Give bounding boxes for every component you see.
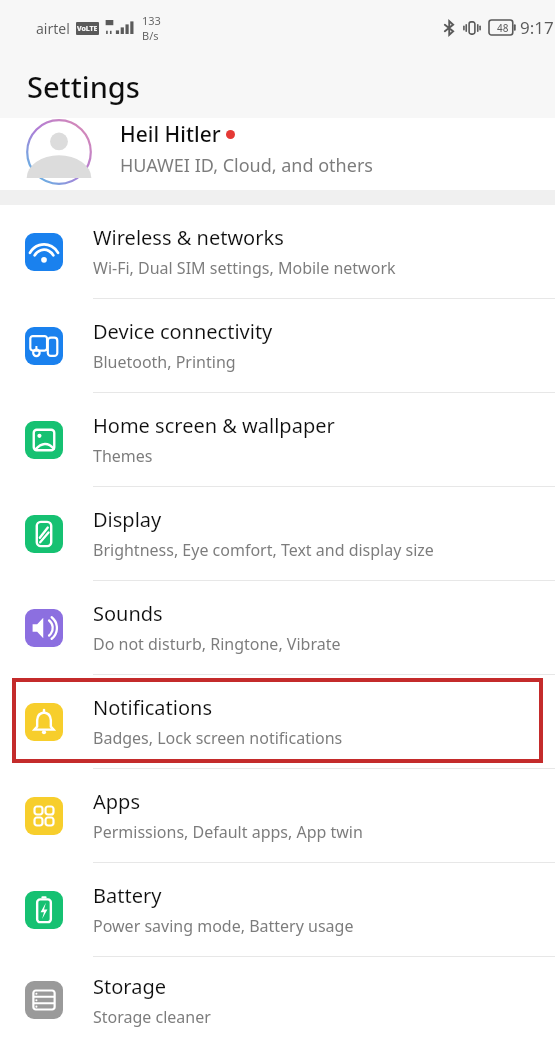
button[interactable]: Heil Hitler [0,118,555,190]
button[interactable]: Wireless & networks [0,205,555,298]
staticText: Storage cleaner [93,1006,211,1028]
other: Vibrate mode [463,19,481,37]
button[interactable]: Battery [0,863,555,956]
staticText: Battery [93,882,162,909]
staticText: airtel [36,19,70,38]
staticText: Storage [93,973,166,1000]
staticText: Heil Hitler [120,120,221,149]
button[interactable]: Home screen & wallpaper [0,393,555,486]
button[interactable]: Display [0,487,555,580]
staticText: Apps [93,788,140,815]
staticText: Brightness, Eye comfort, Text and displa… [93,539,434,561]
staticText: Do not disturb, Ringtone, Vibrate [93,633,341,655]
staticText: Wireless & networks [93,224,284,251]
staticText: Bluetooth, Printing [93,351,236,373]
other: Battery 48 percent [489,20,516,35]
staticText: B/s [142,28,159,43]
other: Bluetooth [443,19,456,37]
staticText: Sounds [93,600,163,627]
button[interactable]: Storage [0,957,555,1043]
staticText: VoLTE [77,24,98,34]
staticText: Notifications [93,694,212,721]
staticText: Permissions, Default apps, App twin [93,821,363,843]
staticText: Device connectivity [93,318,273,345]
button[interactable]: Apps [0,769,555,862]
staticText: Themes [93,445,153,467]
staticText: HUAWEI ID, Cloud, and others [120,153,373,178]
staticText: Settings [27,67,140,106]
button[interactable]: Sounds [0,581,555,674]
button[interactable]: Notifications [0,675,555,768]
staticText: Power saving mode, Battery usage [93,915,354,937]
staticText: Wi-Fi, Dual SIM settings, Mobile network [93,257,396,279]
staticText: 9:17 [520,16,554,39]
staticText: Display [93,506,162,533]
staticText: Badges, Lock screen notifications [93,727,343,749]
staticText: 48 [497,21,509,35]
staticText: 133 [142,13,161,28]
button[interactable]: Device connectivity [0,299,555,392]
staticText: Home screen & wallpaper [93,412,335,439]
